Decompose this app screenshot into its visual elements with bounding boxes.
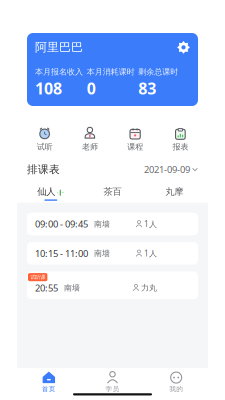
staticText: 南墙 — [64, 283, 80, 293]
staticText: 20:55 — [35, 282, 58, 294]
staticText: 试听 — [37, 142, 53, 152]
button[interactable]: 丸摩 — [143, 184, 205, 203]
button[interactable]: 学员 — [81, 371, 144, 393]
staticText: 南墙 — [94, 219, 110, 229]
staticText: 老师 — [82, 142, 98, 152]
staticText: 排课表 — [27, 163, 60, 176]
button[interactable]: 首页 — [17, 371, 81, 393]
staticText: 0 — [87, 78, 96, 99]
staticText: 试听课 — [30, 274, 45, 280]
staticText: 力丸 — [141, 283, 157, 293]
button[interactable]: 课程 — [112, 127, 158, 152]
staticText: 2021-09-09 — [144, 163, 190, 176]
button[interactable]: 茶百 — [82, 184, 143, 203]
staticText: 剩余总课时 — [138, 67, 178, 77]
staticText: 本月消耗课时 — [87, 67, 135, 77]
button[interactable]: 试听 — [22, 127, 67, 152]
staticText: 我的 — [169, 385, 183, 393]
staticText: 本月报名收入 — [35, 67, 83, 77]
button[interactable]: 20:55 — [27, 272, 198, 299]
button[interactable]: 设置 — [177, 41, 190, 54]
staticText: 学员 — [105, 385, 119, 393]
staticText: 课程 — [127, 142, 143, 152]
staticText: 报表 — [172, 142, 188, 152]
staticText: 南墙 — [94, 248, 110, 258]
button[interactable]: 仙人 — [20, 184, 82, 203]
staticText: 1人 — [144, 219, 157, 229]
staticText: 茶百 — [103, 186, 121, 197]
staticText: 108 — [35, 78, 62, 99]
button[interactable]: 09:00 - 09:45 — [27, 213, 198, 235]
staticText: 阿里巴巴 — [35, 40, 83, 55]
staticText: 首页 — [42, 385, 56, 393]
staticText: 丸摩 — [165, 186, 183, 197]
button[interactable]: 我的 — [144, 371, 208, 393]
staticText: 1人 — [144, 248, 157, 259]
button[interactable]: 10:15 - 11:00 — [27, 242, 198, 265]
staticText: 83 — [138, 78, 156, 99]
button[interactable]: 2021-09-09 — [144, 163, 198, 176]
staticText: 仙人 — [37, 186, 55, 197]
button[interactable]: 报表 — [158, 127, 203, 152]
button[interactable]: 老师 — [67, 127, 112, 152]
staticText: 10:15 - 11:00 — [35, 247, 88, 260]
staticText: 09:00 - 09:45 — [35, 218, 88, 230]
